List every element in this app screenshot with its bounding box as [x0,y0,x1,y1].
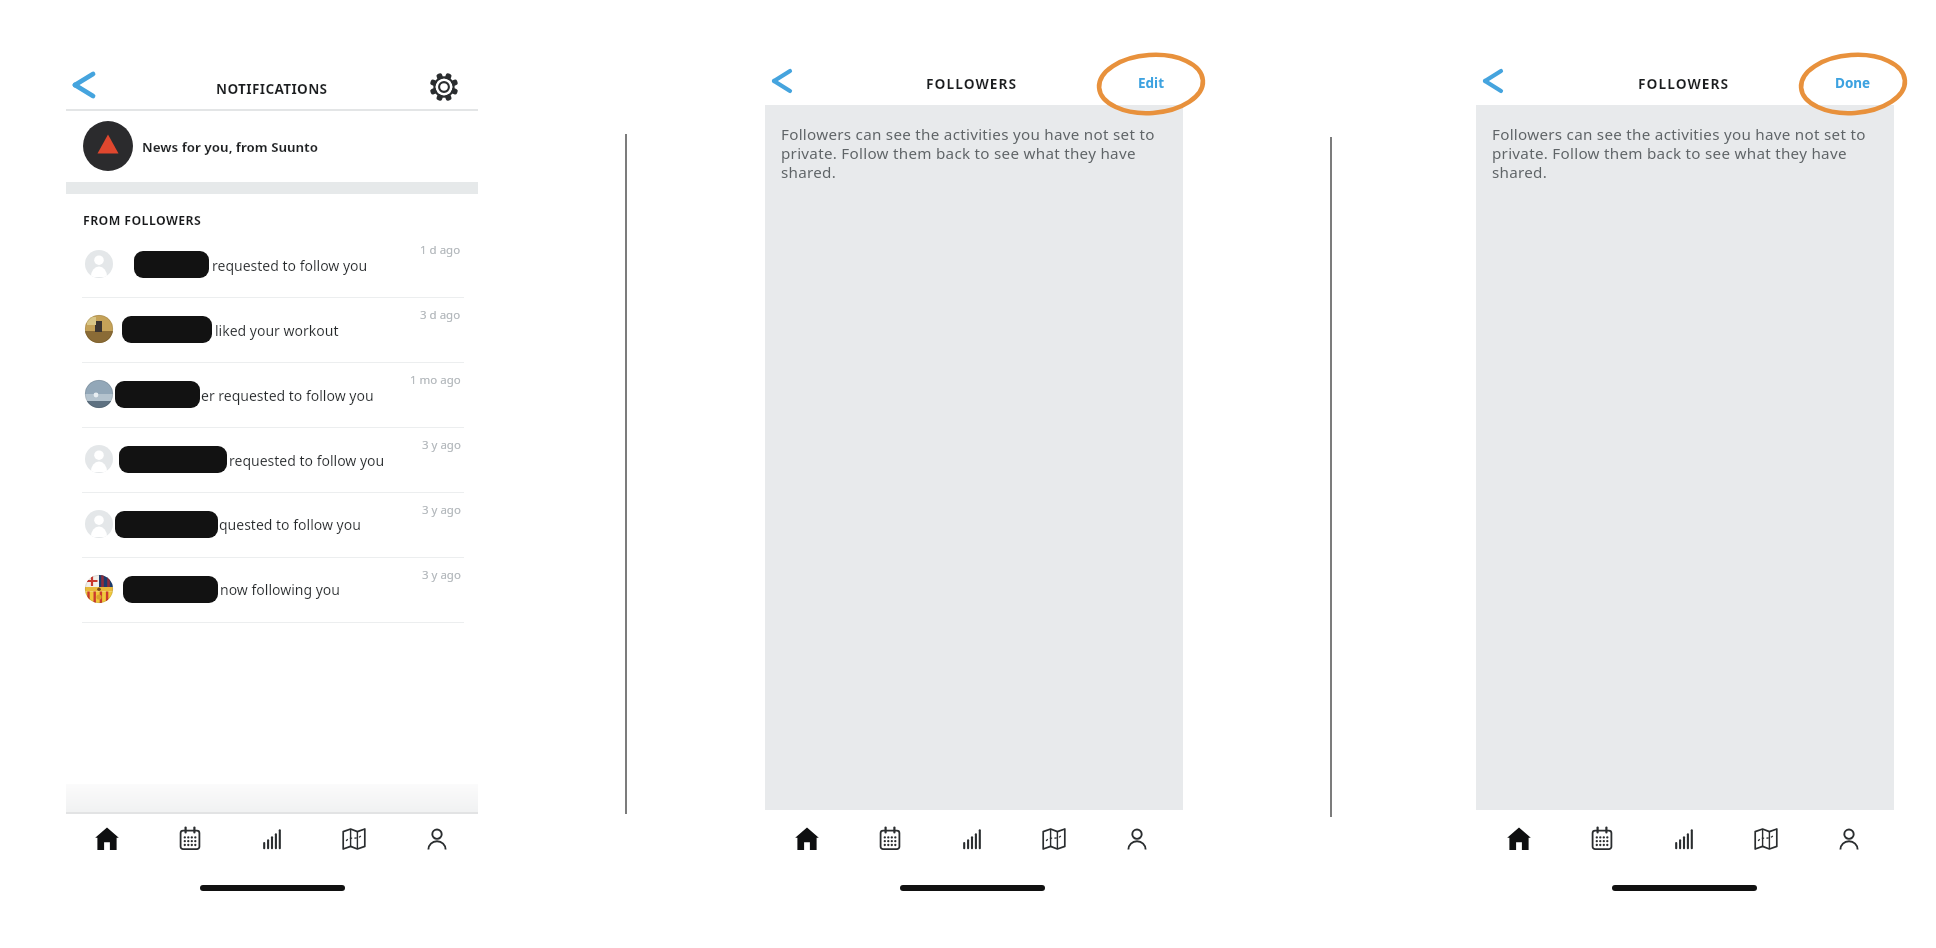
button[interactable] [66,362,478,427]
button[interactable] [952,819,992,859]
staticText: FOLLOWERS [926,74,1018,93]
button[interactable] [787,819,827,859]
staticText: requested to follow you [229,451,385,470]
staticText: 3 y ago [422,502,461,518]
staticText: liked your workout [215,321,339,340]
staticText: NOTIFICATIONS [216,79,328,98]
staticText: 3 y ago [422,567,461,583]
staticText: Followers can see the activities you hav… [781,124,1155,182]
staticText: FOLLOWERS [1638,74,1730,93]
staticText: 3 d ago [420,307,461,323]
button[interactable] [66,232,478,297]
button[interactable] [66,491,478,556]
staticText: now following you [220,580,340,599]
button[interactable]: Edit [1111,67,1191,99]
button[interactable] [870,819,910,859]
button[interactable] [334,819,374,859]
staticText: Done [1835,74,1871,92]
button[interactable] [66,297,478,362]
staticText: News for you, from Suunto [142,138,319,156]
button[interactable] [1117,819,1157,859]
button[interactable] [66,112,478,182]
button[interactable] [1746,819,1786,859]
staticText: Followers can see the activities you hav… [1492,124,1866,182]
button[interactable] [1034,819,1074,859]
staticText: 1 mo ago [410,372,461,388]
button[interactable] [87,819,127,859]
button[interactable]: Done [1813,67,1893,99]
staticText: er requested to follow you [201,386,374,405]
staticText: quested to follow you [219,515,361,534]
button[interactable] [1582,819,1622,859]
staticText: 1 d ago [420,242,461,258]
staticText: requested to follow you [212,256,368,275]
button[interactable] [1499,819,1539,859]
button[interactable] [766,65,798,97]
button[interactable] [1829,819,1869,859]
button[interactable] [417,819,457,859]
button[interactable] [252,819,292,859]
button[interactable] [1664,819,1704,859]
button[interactable] [424,67,464,107]
button[interactable] [68,69,100,101]
button[interactable] [66,427,478,492]
button[interactable] [66,556,478,621]
button[interactable] [1477,65,1509,97]
staticText: Edit [1138,74,1164,92]
button[interactable] [170,819,210,859]
staticText: 3 y ago [422,437,461,453]
staticText: FROM FOLLOWERS [83,212,202,229]
